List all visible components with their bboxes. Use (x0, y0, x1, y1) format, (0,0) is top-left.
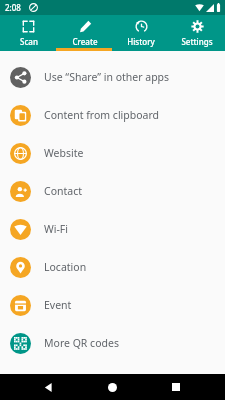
staticText: Scan (20, 36, 38, 47)
button[interactable]: Content from clipboard (0, 96, 225, 134)
button[interactable]: Recents (165, 376, 187, 398)
button[interactable]: Settings (169, 15, 225, 51)
button[interactable]: Website (0, 134, 225, 172)
staticText: Content from clipboard (44, 108, 160, 122)
button[interactable]: Home (101, 376, 123, 398)
button[interactable]: Use “Share” in other apps (0, 58, 225, 96)
staticText: More QR codes (44, 336, 119, 350)
staticText: Use “Share” in other apps (44, 70, 170, 84)
staticText: Event (44, 298, 72, 312)
staticText: History (127, 36, 155, 47)
button[interactable]: More QR codes (0, 324, 225, 362)
staticText: Create (72, 36, 98, 47)
staticText: Contact (44, 184, 82, 198)
staticText: Settings (181, 36, 213, 47)
button[interactable]: History (113, 15, 169, 51)
button[interactable]: Wi-Fi (0, 210, 225, 248)
button[interactable]: Location (0, 248, 225, 286)
staticText: Website (44, 146, 84, 160)
staticText: Location (44, 260, 87, 274)
button[interactable]: Event (0, 286, 225, 324)
button[interactable]: Scan (0, 15, 57, 51)
button[interactable]: Back (37, 376, 59, 398)
button[interactable]: Contact (0, 172, 225, 210)
staticText: 2:08 (5, 2, 21, 13)
button[interactable]: Create (57, 15, 113, 51)
staticText: Wi-Fi (44, 222, 69, 236)
